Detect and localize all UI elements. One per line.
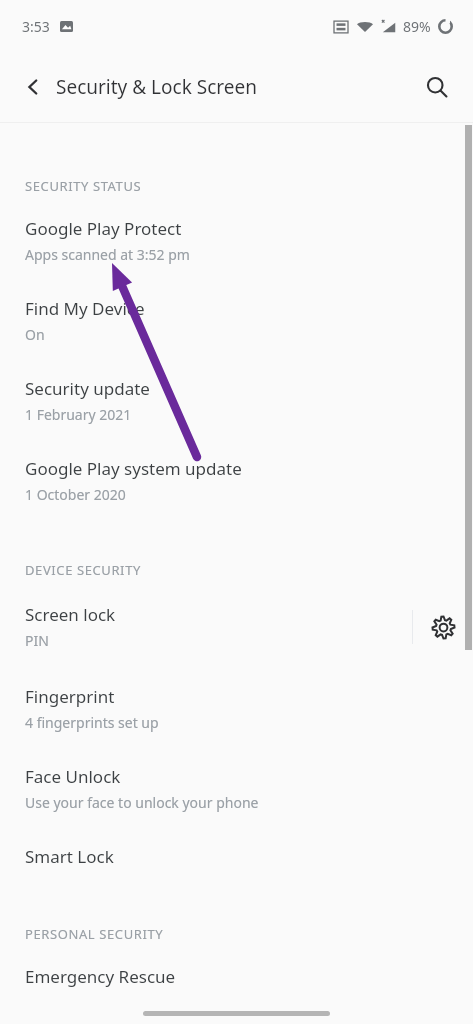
staticText: PERSONAL SECURITY [25, 925, 164, 943]
staticText: Apps scanned at 3:52 pm [25, 245, 190, 264]
staticText: Face Unlock [25, 765, 121, 788]
staticText: Use your face to unlock your phone [25, 793, 259, 812]
button[interactable]: Back [14, 68, 52, 106]
staticText: On [25, 325, 45, 344]
staticText: Emergency Rescue [25, 965, 176, 988]
button[interactable]: Screen lock settings [413, 603, 473, 651]
button[interactable]: Find My Device [0, 297, 473, 344]
button[interactable]: Security update [0, 377, 473, 424]
staticText: Screen lock [25, 603, 116, 626]
button[interactable]: Emergency Rescue [0, 965, 473, 988]
staticText: 3:53 [22, 17, 50, 36]
button[interactable]: Screen lock [0, 601, 412, 652]
staticText: 4 fingerprints set up [25, 713, 159, 732]
button[interactable]: Fingerprint [0, 685, 473, 732]
staticText: Google Play Protect [25, 217, 182, 240]
staticText: Security & Lock Screen [56, 74, 257, 100]
button[interactable]: Google Play Protect [0, 217, 473, 264]
button[interactable]: Search [417, 67, 457, 107]
staticText: Google Play system update [25, 457, 242, 480]
staticText: 1 October 2020 [25, 485, 126, 504]
button[interactable]: Google Play system update [0, 457, 473, 504]
staticText: DEVICE SECURITY [25, 561, 141, 579]
staticText: Find My Device [25, 297, 145, 320]
button[interactable]: Smart Lock [0, 845, 473, 868]
button[interactable]: Face Unlock [0, 765, 473, 812]
staticText: SECURITY STATUS [25, 177, 142, 195]
staticText: Security update [25, 377, 150, 400]
staticText: Fingerprint [25, 685, 115, 708]
staticText: PIN [25, 631, 49, 650]
staticText: 89% [403, 17, 431, 36]
staticText: 1 February 2021 [25, 405, 132, 424]
staticText: Smart Lock [25, 845, 114, 868]
